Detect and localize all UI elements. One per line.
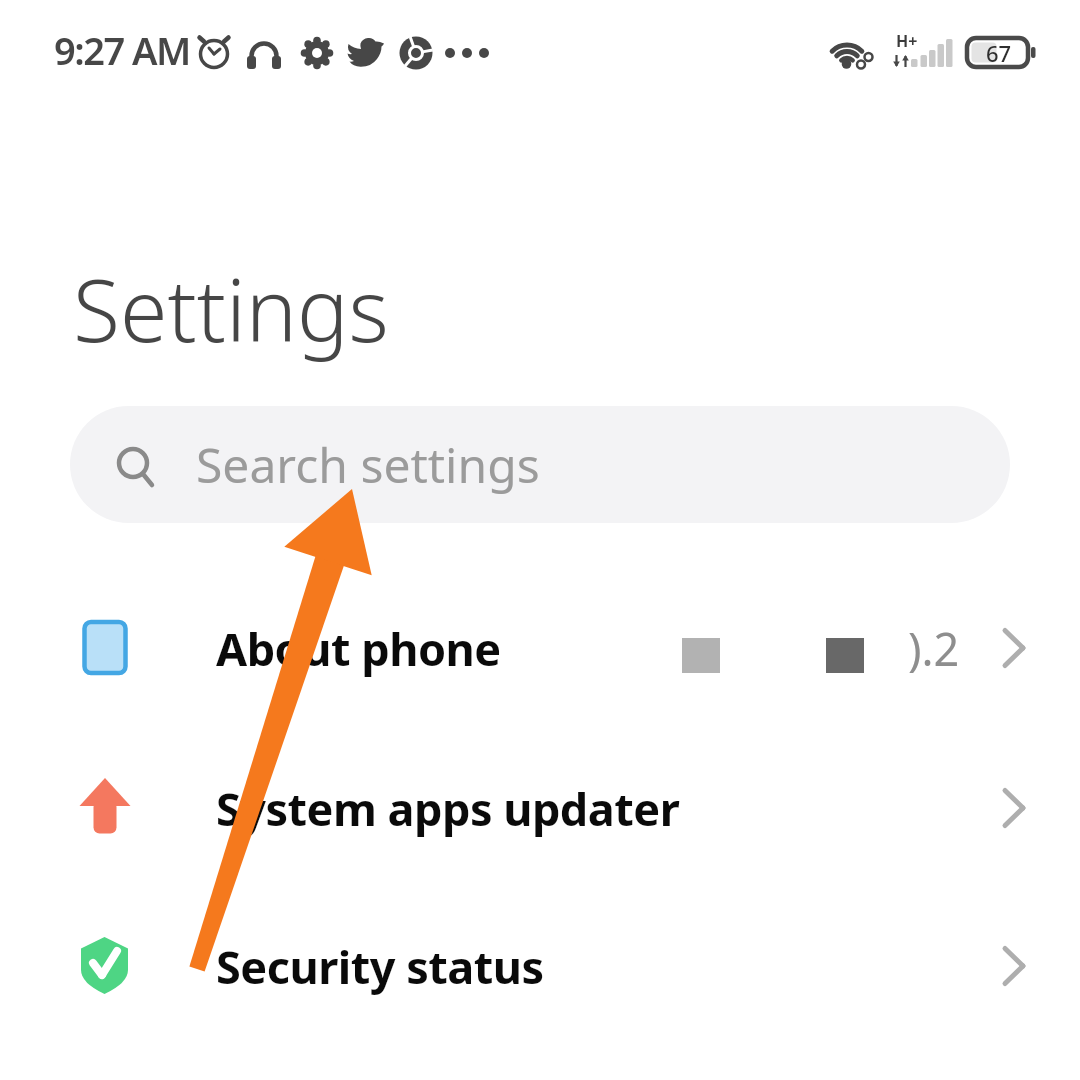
- staticText: System apps updater: [216, 778, 680, 839]
- button[interactable]: Security status: [0, 901, 1080, 1031]
- button[interactable]: System apps updater: [0, 743, 1080, 873]
- button[interactable]: Search settings: [70, 406, 1010, 523]
- staticText: H+: [896, 30, 918, 50]
- staticText: 67: [986, 38, 1012, 67]
- staticText: Settings: [73, 250, 389, 367]
- staticText: About phone: [216, 618, 501, 679]
- staticText: ).2: [908, 618, 960, 679]
- button[interactable]: About phone: [0, 583, 1080, 713]
- staticText: Search settings: [196, 432, 540, 497]
- staticText: Security status: [216, 936, 544, 997]
- staticText: 9:27 AM: [54, 24, 190, 76]
